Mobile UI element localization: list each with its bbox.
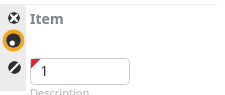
- button[interactable]: 1: [30, 58, 130, 85]
- button[interactable]: Blocked: [8, 61, 21, 74]
- button[interactable]: Close: [8, 12, 20, 24]
- staticText: Description: [30, 85, 90, 95]
- button[interactable]: Selected item: [2, 29, 25, 52]
- staticText: 1: [40, 60, 49, 80]
- staticText: Item: [30, 9, 64, 28]
